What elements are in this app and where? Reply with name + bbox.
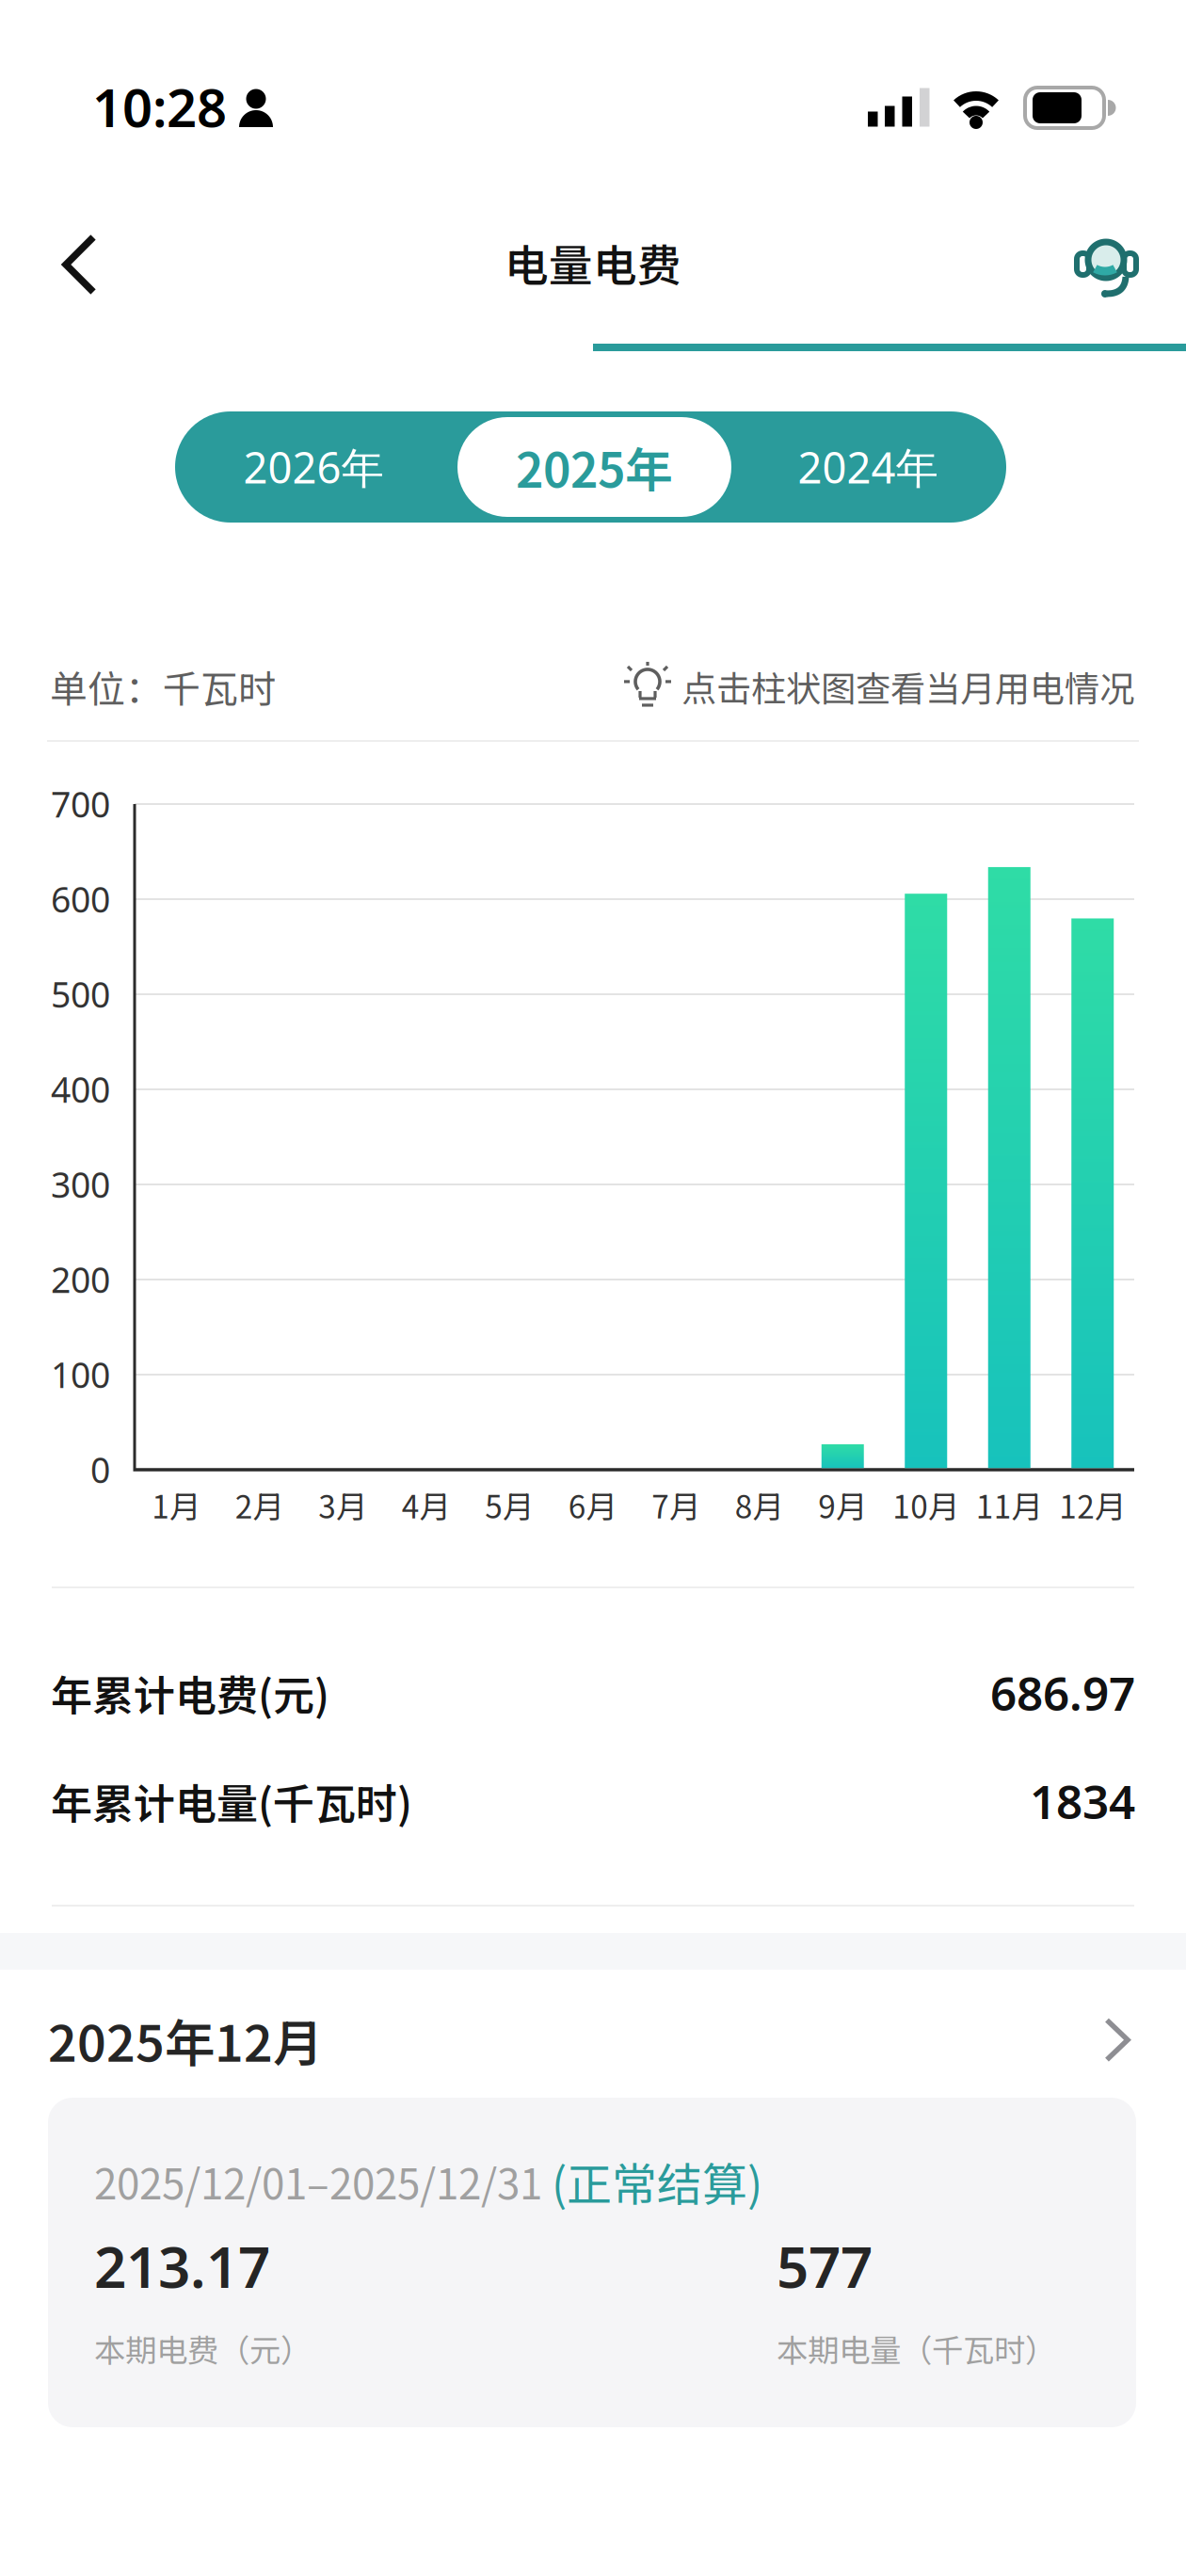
staticText: 1834 — [1030, 1770, 1135, 1832]
button[interactable]: 9月 — [822, 1444, 864, 1468]
staticText: 686.97 — [990, 1662, 1135, 1723]
staticText: 点击柱状图查看当月用电情况 — [681, 661, 1134, 712]
staticText: 213.17 — [94, 2229, 270, 2304]
staticText: 577 — [777, 2229, 873, 2304]
staticText: 年累计电费(元) — [51, 1663, 329, 1723]
staticText: 200 — [51, 1256, 110, 1303]
staticText: 2026年 — [243, 439, 384, 495]
staticText: 11月 — [976, 1482, 1043, 1527]
staticText: 电量电费 — [505, 231, 681, 294]
staticText: 本期电费（元） — [94, 2326, 312, 2371]
staticText: 0 — [90, 1446, 110, 1493]
button[interactable]: 2025年12月 账单 — [48, 2098, 1136, 2427]
staticText: 年累计电量(千瓦时) — [51, 1771, 412, 1831]
button[interactable]: Customer service — [1067, 220, 1143, 305]
staticText: 9月 — [818, 1482, 867, 1527]
staticText: 700 — [51, 781, 110, 827]
staticText: 10:28 — [92, 72, 227, 142]
button[interactable]: 2025年 — [457, 417, 731, 517]
staticText: 4月 — [402, 1482, 451, 1527]
staticText: 8月 — [735, 1482, 784, 1527]
staticText: 10月 — [893, 1482, 959, 1527]
staticText: 本期电量（千瓦时） — [777, 2326, 1056, 2371]
button[interactable]: 2024年 — [729, 411, 1006, 523]
button[interactable]: 2026年 — [175, 411, 452, 523]
staticText: 1月 — [152, 1482, 201, 1527]
staticText: 500 — [51, 971, 110, 1017]
staticText: 300 — [51, 1161, 110, 1208]
staticText: 400 — [51, 1066, 110, 1113]
button[interactable]: 11月 — [988, 867, 1031, 1468]
staticText: 5月 — [485, 1482, 534, 1527]
button[interactable]: 12月 — [1071, 918, 1114, 1468]
staticText: 100 — [51, 1351, 110, 1398]
staticText: 2月 — [235, 1482, 284, 1527]
staticText: 12月 — [1059, 1482, 1126, 1527]
staticText: 6月 — [568, 1482, 617, 1527]
staticText: 600 — [51, 876, 110, 922]
staticText: 2024年 — [798, 439, 938, 495]
staticText: 2025年 — [516, 432, 673, 502]
staticText: 7月 — [652, 1482, 700, 1527]
button[interactable]: Back — [28, 217, 151, 313]
staticText: 2025年12月 — [48, 2004, 323, 2076]
staticText: 单位：千瓦时 — [50, 659, 276, 714]
staticText: 3月 — [318, 1482, 367, 1527]
staticText: 2025/12/01–2025/12/31 — [94, 2151, 552, 2211]
staticText: (正常结算) — [552, 2149, 762, 2214]
button[interactable]: 2025年12月 详情 — [48, 2004, 1132, 2076]
button[interactable]: 10月 — [905, 894, 947, 1468]
